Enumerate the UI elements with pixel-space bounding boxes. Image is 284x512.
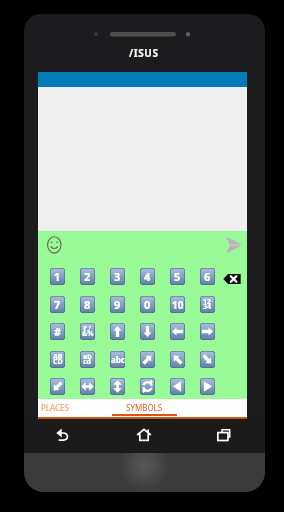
button[interactable]: pl — [170, 378, 185, 395]
button[interactable]: Send — [224, 235, 244, 255]
staticText: 34 — [203, 302, 212, 312]
button[interactable]: pr — [200, 378, 215, 395]
button[interactable]: down — [140, 323, 155, 340]
button[interactable]: 10 — [170, 296, 185, 313]
button[interactable]: Recents — [209, 424, 239, 446]
staticText: 1 — [54, 269, 61, 284]
button[interactable]: abc — [110, 351, 125, 368]
button[interactable]: 6 — [200, 268, 215, 285]
button[interactable]: 2 — [80, 268, 95, 285]
staticText: abc — [111, 354, 125, 365]
staticText: 7 — [54, 297, 61, 312]
staticText: &% — [82, 329, 94, 339]
staticText: 2 — [84, 269, 91, 284]
staticText: 12 — [203, 297, 212, 307]
staticText: ab — [83, 352, 92, 362]
button[interactable]: ud — [110, 378, 125, 395]
button[interactable]: left — [170, 323, 185, 340]
staticText: ₹♪ — [83, 324, 92, 334]
staticText: AB — [53, 352, 63, 362]
staticText: /ISUS — [129, 46, 159, 60]
button[interactable]: sw — [50, 378, 65, 395]
button[interactable]: sync — [140, 378, 155, 395]
staticText: 4 — [144, 269, 151, 284]
staticText: 9 — [114, 297, 121, 312]
button[interactable]: Backspace — [220, 269, 244, 289]
staticText: CD — [53, 357, 63, 367]
button[interactable]: 5 — [170, 268, 185, 285]
button[interactable]: Home — [129, 424, 159, 446]
button[interactable]: 9 — [110, 296, 125, 313]
button[interactable]: # — [50, 323, 65, 340]
button[interactable]: PLACES — [38, 398, 110, 416]
button[interactable]: grid — [200, 296, 215, 313]
button[interactable]: nw — [170, 351, 185, 368]
staticText: 3 — [114, 269, 121, 284]
button[interactable]: ne — [140, 351, 155, 368]
button[interactable]: 8 — [80, 296, 95, 313]
staticText: 8 — [84, 297, 91, 312]
button[interactable]: 4 — [140, 268, 155, 285]
button[interactable]: se — [200, 351, 215, 368]
button[interactable]: 0 — [140, 296, 155, 313]
button[interactable]: SYMBOLS — [112, 398, 177, 416]
button[interactable]: sym — [80, 323, 95, 340]
button[interactable]: lr — [80, 378, 95, 395]
button[interactable]: abcd — [80, 351, 95, 368]
staticText: cd — [83, 357, 92, 367]
staticText: # — [54, 324, 62, 339]
button[interactable]: ABCD — [50, 351, 65, 368]
staticText: 5 — [174, 269, 181, 284]
button[interactable]: up — [110, 323, 125, 340]
staticText: 0 — [144, 297, 151, 312]
staticText: 6 — [204, 269, 211, 284]
button[interactable]: right — [200, 323, 215, 340]
button[interactable]: 1 — [50, 268, 65, 285]
staticText: SYMBOLS — [126, 402, 163, 413]
staticText: PLACES — [41, 402, 69, 413]
staticText: 10 — [172, 298, 184, 312]
button[interactable]: Emoji — [44, 235, 65, 255]
button[interactable]: Back — [47, 424, 77, 446]
button[interactable]: 3 — [110, 268, 125, 285]
button[interactable]: 7 — [50, 296, 65, 313]
